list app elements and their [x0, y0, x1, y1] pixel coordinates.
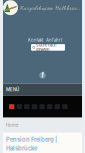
staticText: Halsbrücke	[6, 145, 37, 152]
staticText: Kurzerlebnisse Halbbrücke	[20, 4, 80, 11]
button[interactable]: Anfahrt	[46, 38, 62, 43]
button[interactable]: Home	[6, 123, 18, 128]
button[interactable]: Menu section	[24, 104, 30, 109]
button[interactable]: Menu section	[9, 104, 14, 109]
staticText: Pension Freiberg |	[6, 136, 57, 143]
button[interactable]: Suche nach Inhalten	[31, 44, 65, 51]
button[interactable]: MENÜ	[3, 84, 82, 96]
staticText: Kontakt	[28, 38, 43, 43]
button[interactable]: Menu section	[39, 104, 45, 109]
button[interactable]: Kontakt	[28, 38, 43, 43]
button[interactable]: Menu section	[62, 104, 68, 109]
staticText: Home	[6, 123, 18, 128]
button[interactable]: Facebook	[39, 72, 46, 79]
staticText: Anfahrt	[46, 38, 62, 43]
staticText: MENÜ	[6, 87, 19, 92]
staticText: f	[41, 72, 43, 79]
staticText: Suche nach Inhalten	[36, 43, 56, 52]
